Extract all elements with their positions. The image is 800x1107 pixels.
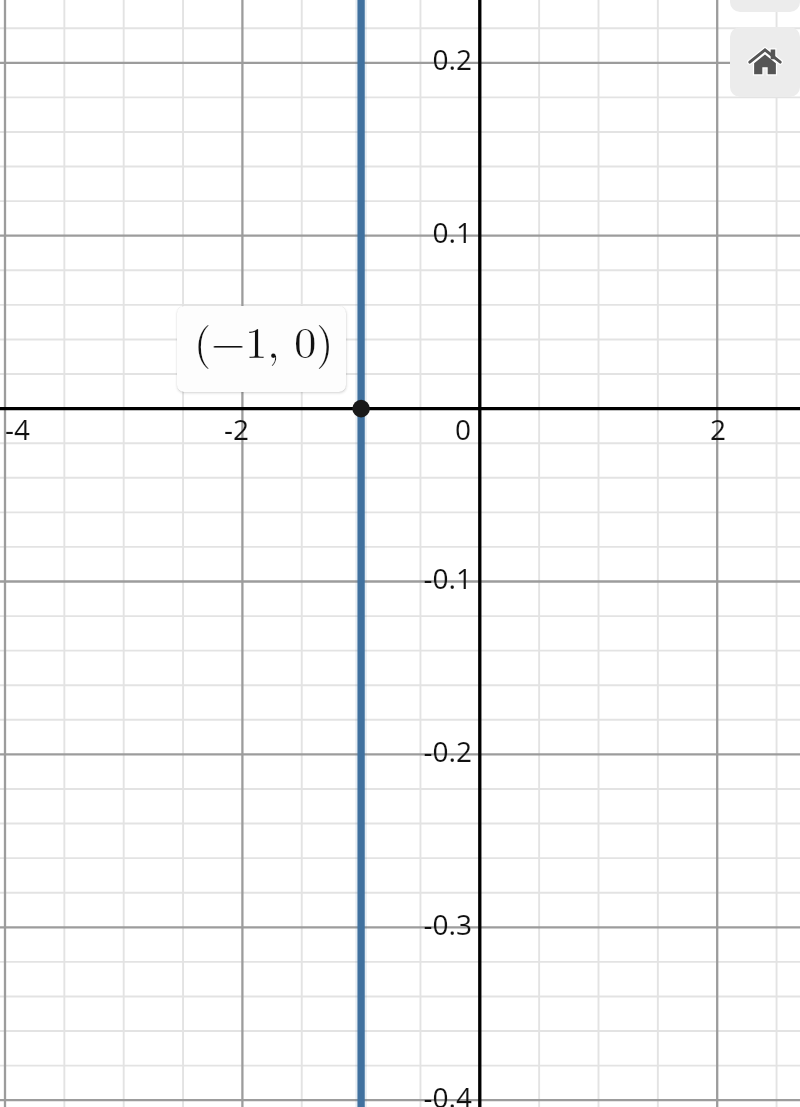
staticText: -0.3 [423, 905, 472, 943]
staticText: -2 [224, 410, 250, 448]
button[interactable]: Zoom out [730, 0, 800, 12]
staticText: 0 [455, 410, 472, 448]
staticText: 2 [710, 410, 727, 448]
staticText: 0.2 [432, 40, 472, 78]
staticText: -0.1 [423, 559, 472, 597]
button[interactable]: Home [730, 27, 800, 97]
staticText: 0.1 [432, 213, 472, 251]
staticText: -0.2 [423, 732, 472, 770]
button[interactable]: (−1, 0) [177, 306, 346, 392]
staticText: -4 [5, 410, 31, 448]
staticText: -0.4 [423, 1078, 472, 1107]
staticText: (−1, 0) [194, 308, 334, 370]
